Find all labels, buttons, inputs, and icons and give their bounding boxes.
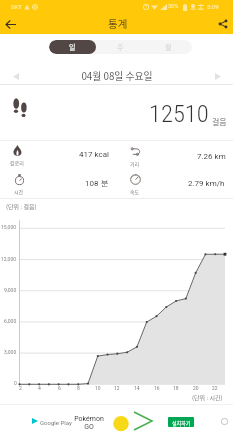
- staticText: 417 kcal: [79, 150, 109, 159]
- button[interactable]: 일: [49, 40, 96, 54]
- staticText: 16: [154, 385, 160, 391]
- staticText: Google Play: [40, 419, 72, 426]
- staticText: 7.26 km: [197, 152, 226, 161]
- staticText: 15,000: [1, 224, 17, 230]
- button[interactable]: Ad info: [221, 418, 228, 425]
- staticText: 20: [193, 385, 199, 391]
- staticText: 주: [117, 42, 124, 52]
- staticText: (단위 : 시간): [192, 393, 223, 402]
- staticText: 12510: [149, 99, 209, 128]
- staticText: 시간: [14, 188, 24, 195]
- staticText: 속도: [130, 188, 140, 195]
- staticText: 걸음: [212, 116, 227, 128]
- staticText: 108 분: [85, 178, 109, 188]
- staticText: 칼로리: [10, 159, 24, 166]
- staticText: 2: [19, 385, 22, 391]
- staticText: 거리: [130, 160, 140, 167]
- staticText: 12: [114, 385, 120, 391]
- staticText: 36%: [168, 3, 179, 9]
- staticText: 월: [165, 42, 172, 52]
- button[interactable]: Share: [213, 14, 233, 34]
- staticText: 설치하기: [172, 419, 191, 426]
- staticText: 04월 08일 수요일: [81, 69, 153, 83]
- staticText: 18: [173, 385, 179, 391]
- button[interactable]: Next day: [208, 66, 228, 86]
- staticText: 8: [77, 385, 80, 391]
- staticText: 10: [95, 385, 101, 391]
- staticText: SKT: [11, 3, 22, 10]
- staticText: 6: [58, 385, 61, 391]
- staticText: 0: [14, 380, 17, 386]
- staticText: 22: [212, 385, 218, 391]
- button[interactable]: Previous day: [6, 66, 26, 86]
- staticText: 통계: [108, 16, 128, 31]
- button[interactable]: Back: [0, 14, 20, 34]
- staticText: 12,000: [1, 256, 17, 262]
- staticText: 4: [38, 385, 41, 391]
- staticText: 6,000: [4, 318, 17, 324]
- staticText: 3,000: [4, 349, 17, 355]
- staticText: Pokémon GO: [74, 415, 104, 431]
- button[interactable]: 주: [96, 40, 144, 54]
- staticText: 9,000: [4, 287, 17, 293]
- staticText: (단위 : 걸음): [6, 202, 37, 211]
- staticText: 8:09: [207, 3, 219, 10]
- button[interactable]: 월: [144, 40, 192, 54]
- button[interactable]: 설치하기: [168, 417, 194, 427]
- staticText: 2.79 km/h: [188, 179, 225, 188]
- staticText: 14: [134, 385, 140, 391]
- staticText: 일: [69, 42, 76, 52]
